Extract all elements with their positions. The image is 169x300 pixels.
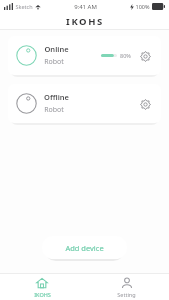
staticText: Offline bbox=[44, 92, 69, 102]
staticText: 9:41 AM bbox=[74, 3, 97, 11]
staticText: Sketch bbox=[15, 3, 33, 10]
staticText: IKOHS bbox=[34, 291, 51, 298]
button[interactable]: Add device bbox=[42, 236, 127, 259]
staticText: Robot bbox=[44, 105, 64, 115]
button[interactable]: Online bbox=[8, 36, 161, 75]
staticText: Robot bbox=[44, 57, 64, 67]
button[interactable]: Offline bbox=[8, 84, 161, 123]
button[interactable]: Settings bbox=[137, 96, 153, 112]
staticText: 100% bbox=[135, 3, 150, 10]
staticText: Add device bbox=[65, 243, 104, 253]
staticText: 80% bbox=[120, 52, 131, 59]
staticText: IKOHS bbox=[66, 15, 104, 28]
button[interactable]: Setting bbox=[84, 274, 169, 300]
button[interactable]: IKOHS bbox=[0, 274, 84, 300]
button[interactable]: Settings bbox=[137, 48, 153, 64]
staticText: Online bbox=[44, 44, 69, 54]
staticText: Setting bbox=[117, 291, 136, 298]
